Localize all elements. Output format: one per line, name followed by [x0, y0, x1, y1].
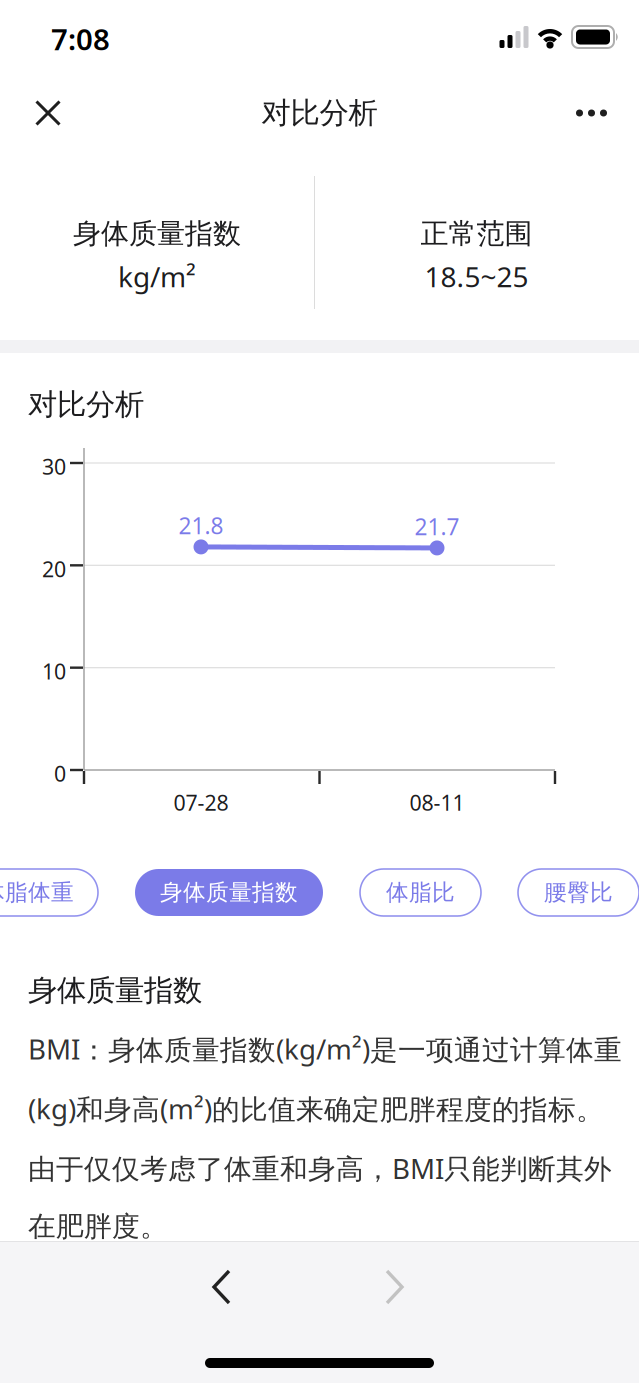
staticText: 腰臀比 [544, 878, 613, 907]
staticText: 身体质量指数 [160, 878, 298, 907]
staticText: 7:08 [51, 19, 110, 59]
staticText: kg/m² [118, 257, 196, 295]
staticText: 18.5~25 [424, 257, 528, 295]
staticText: 21.8 [178, 510, 223, 541]
staticText: 20 [42, 554, 66, 583]
staticText: 对比分析 [261, 94, 377, 131]
staticText: 身体质量指数 [28, 972, 202, 1009]
staticText: 体脂体重 [0, 878, 74, 907]
button[interactable]: 腰臀比 [518, 869, 639, 916]
button[interactable]: Next [360, 1245, 428, 1329]
staticText: 0 [54, 759, 66, 788]
button[interactable]: 体脂比 [360, 869, 481, 916]
staticText: 07-28 [173, 788, 228, 817]
staticText: 正常范围 [420, 216, 532, 251]
button[interactable]: 体脂体重 [0, 869, 98, 916]
button[interactable]: Previous [188, 1245, 256, 1329]
button[interactable]: More options [556, 80, 627, 146]
staticText: 体脂比 [386, 878, 455, 907]
staticText: BMI：身体质量指数(kg/m²)是一项通过计算体重(kg)和身高(m²)的比值… [28, 1030, 622, 1244]
staticText: 10 [42, 657, 66, 686]
staticText: 身体质量指数 [73, 216, 241, 251]
button[interactable]: Close [15, 80, 81, 146]
button[interactable]: 身体质量指数 [135, 869, 323, 916]
staticText: 对比分析 [28, 386, 144, 423]
staticText: 30 [42, 452, 66, 481]
staticText: 21.7 [414, 511, 459, 542]
staticText: 08-11 [409, 788, 464, 817]
